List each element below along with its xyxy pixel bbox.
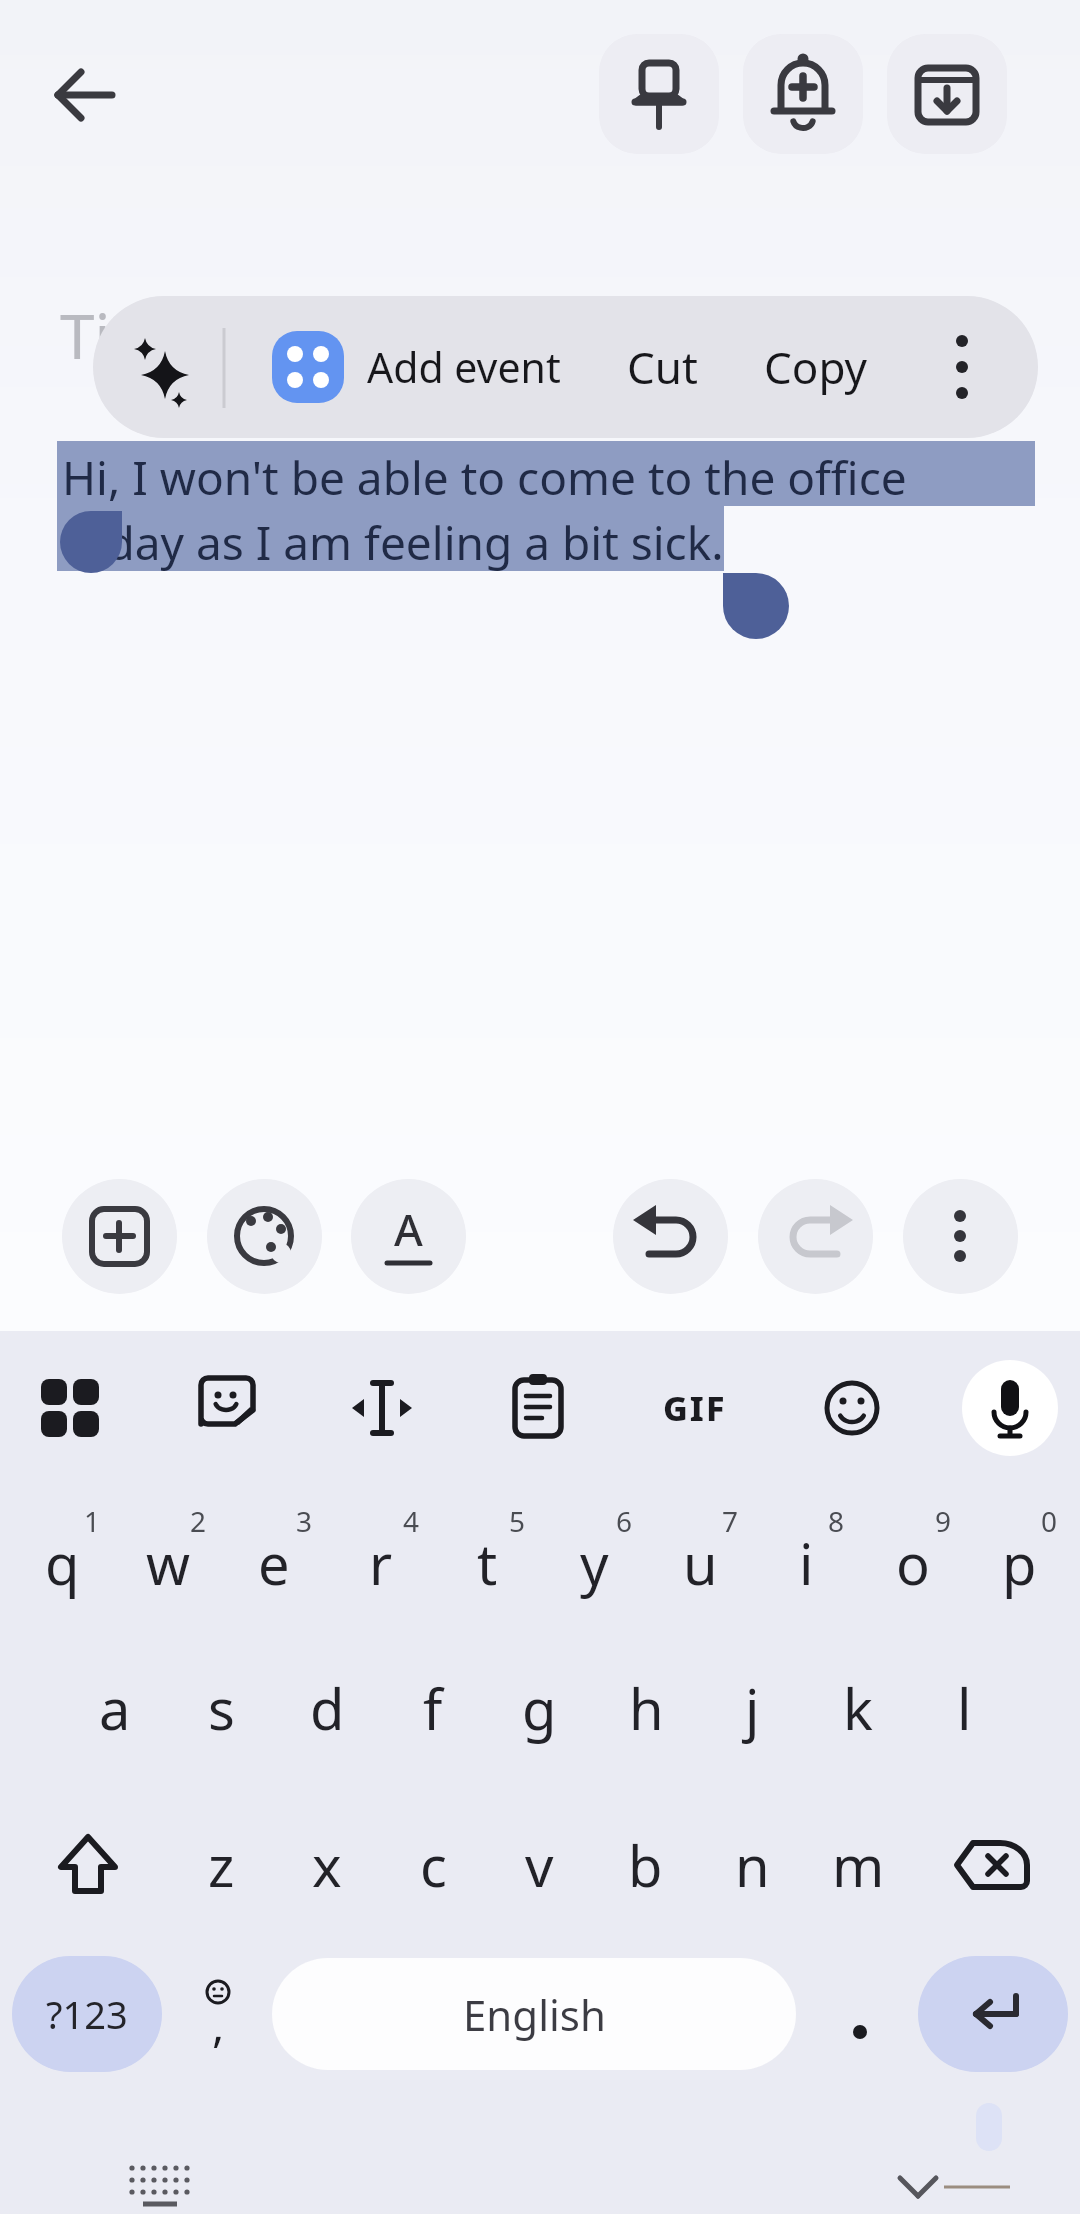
button[interactable] <box>887 34 1007 154</box>
button[interactable]: Add event <box>243 306 573 428</box>
button[interactable]: Cut <box>595 306 730 428</box>
button[interactable] <box>599 34 719 154</box>
staticText: a <box>99 1670 131 1746</box>
button[interactable]: h <box>593 1638 699 1778</box>
button[interactable] <box>920 1795 1062 1935</box>
staticText: w <box>146 1525 191 1601</box>
button[interactable]: u <box>647 1488 753 1638</box>
staticText: h <box>629 1670 664 1746</box>
staticText: 1 <box>84 1502 101 1540</box>
button[interactable] <box>207 1179 322 1294</box>
button[interactable] <box>918 1956 1068 2072</box>
button[interactable] <box>328 1348 436 1468</box>
staticText: Title <box>60 293 184 377</box>
button[interactable]: q <box>9 1488 115 1638</box>
button[interactable] <box>743 34 863 154</box>
staticText: m <box>832 1827 885 1903</box>
button[interactable]: English <box>272 1958 796 2070</box>
staticText: u <box>683 1525 718 1601</box>
staticText: p <box>1002 1525 1037 1601</box>
staticText: k <box>843 1670 873 1746</box>
staticText: l <box>957 1670 972 1746</box>
staticText: A <box>394 1199 423 1259</box>
staticText: Add event <box>367 339 561 395</box>
button[interactable]: b <box>592 1795 698 1935</box>
button[interactable]: c <box>380 1795 486 1935</box>
staticText: GIF <box>663 1385 727 1431</box>
button[interactable] <box>173 1348 281 1468</box>
button[interactable]: g <box>486 1638 592 1778</box>
button[interactable]: n <box>699 1795 805 1935</box>
button[interactable] <box>962 1360 1058 1456</box>
button[interactable]: r <box>328 1488 434 1638</box>
staticText: v <box>525 1827 554 1903</box>
button[interactable]: GIF <box>641 1348 749 1468</box>
staticText: f <box>423 1670 443 1746</box>
staticText: 2 <box>190 1502 207 1540</box>
button[interactable]: v <box>486 1795 592 1935</box>
button[interactable]: A <box>351 1179 466 1294</box>
button[interactable] <box>62 1179 177 1294</box>
button[interactable]: k <box>805 1638 911 1778</box>
button[interactable] <box>613 1179 728 1294</box>
staticText: 0 <box>1041 1502 1058 1540</box>
button[interactable] <box>758 1179 873 1294</box>
button[interactable] <box>910 306 1020 428</box>
staticText: , <box>212 1993 225 2056</box>
staticText: Cut <box>627 337 698 397</box>
staticText: Copy <box>764 337 868 397</box>
staticText: g <box>522 1670 557 1746</box>
staticText: x <box>312 1827 342 1903</box>
button[interactable] <box>903 1179 1018 1294</box>
staticText: d <box>310 1670 345 1746</box>
staticText: e <box>258 1525 290 1601</box>
staticText: 9 <box>935 1502 952 1540</box>
button[interactable]: a <box>62 1638 168 1778</box>
button[interactable] <box>113 316 223 418</box>
staticText: c <box>420 1827 447 1903</box>
staticText: 3 <box>296 1502 313 1540</box>
staticText: 6 <box>616 1502 633 1540</box>
button[interactable] <box>798 1348 906 1468</box>
button[interactable]: d <box>274 1638 380 1778</box>
button[interactable]: f <box>380 1638 486 1778</box>
staticText: b <box>628 1827 663 1903</box>
button[interactable]: o <box>860 1488 966 1638</box>
staticText: i <box>799 1525 814 1601</box>
staticText: n <box>735 1827 770 1903</box>
button[interactable]: ?123 <box>12 1956 162 2072</box>
button[interactable]: l <box>911 1638 1017 1778</box>
button[interactable]: t <box>434 1488 540 1638</box>
button[interactable]: x <box>274 1795 380 1935</box>
staticText: 5 <box>509 1502 526 1540</box>
staticText: y <box>580 1525 609 1601</box>
staticText: j <box>745 1670 760 1746</box>
staticText: s <box>208 1670 235 1746</box>
staticText: q <box>45 1525 80 1601</box>
button[interactable]: s <box>168 1638 274 1778</box>
button[interactable]: , <box>170 1956 266 2072</box>
button[interactable]: p <box>966 1488 1072 1638</box>
staticText: o <box>896 1525 930 1601</box>
button[interactable] <box>18 1795 158 1935</box>
button[interactable] <box>16 1348 124 1468</box>
staticText: English <box>463 1986 606 2043</box>
staticText: 7 <box>722 1502 739 1540</box>
button[interactable]: j <box>699 1638 805 1778</box>
staticText: today as I am feeling a bit sick. <box>62 511 724 574</box>
staticText: r <box>369 1525 393 1601</box>
staticText: t <box>477 1525 498 1601</box>
button[interactable]: y <box>541 1488 647 1638</box>
button[interactable]: e <box>221 1488 327 1638</box>
button[interactable] <box>25 35 145 155</box>
button[interactable] <box>484 1348 592 1468</box>
staticText: ?123 <box>46 1988 128 2040</box>
button[interactable]: m <box>805 1795 911 1935</box>
staticText: z <box>208 1827 235 1903</box>
button[interactable] <box>808 1956 908 2072</box>
button[interactable]: i <box>753 1488 859 1638</box>
button[interactable]: Copy <box>748 306 883 428</box>
button[interactable]: w <box>115 1488 221 1638</box>
button[interactable]: z <box>168 1795 274 1935</box>
staticText: 4 <box>403 1502 420 1540</box>
